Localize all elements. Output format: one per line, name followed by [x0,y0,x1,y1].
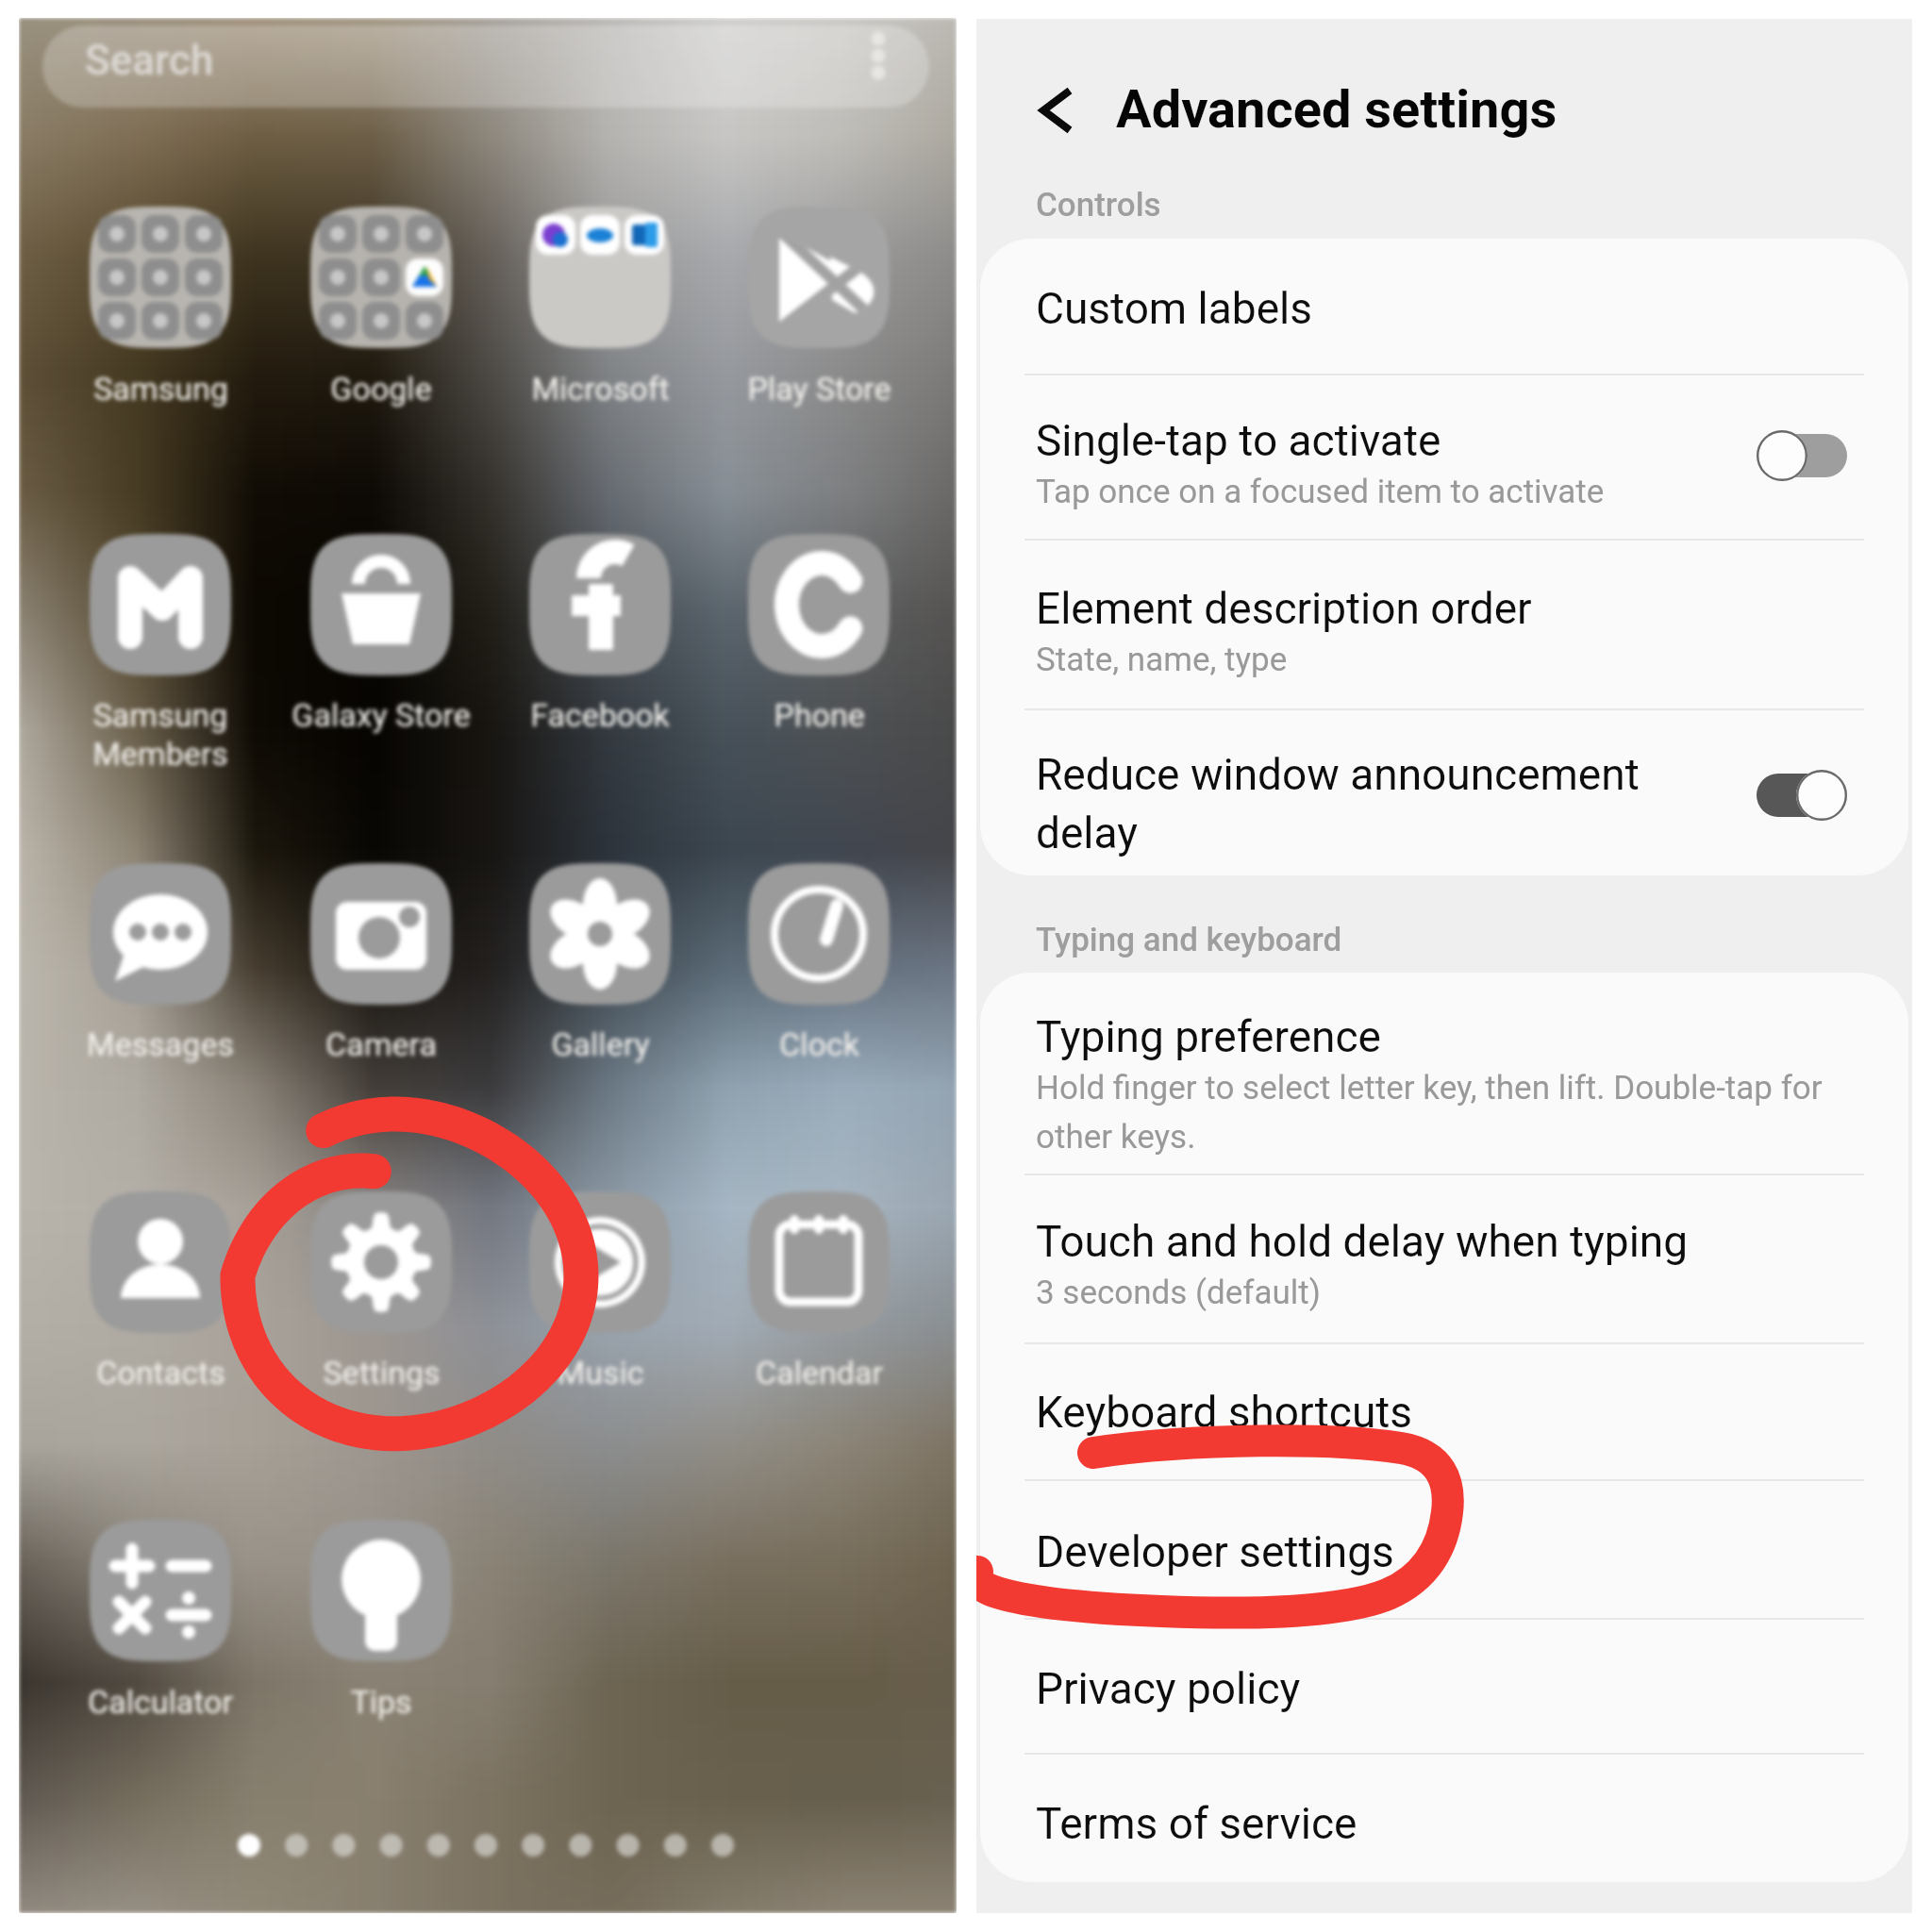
button[interactable]: Single-tap to activate [980,374,1908,539]
staticText: Samsung [93,370,228,408]
staticText: Element description order [1036,583,1532,634]
button[interactable]: Phone [708,601,929,808]
staticText: 3 seconds (default) [1036,1274,1321,1312]
button[interactable]: Galaxy Store [271,601,491,808]
button[interactable]: Samsung Members [50,601,271,808]
button[interactable]: Typing preference [980,973,1908,1174]
staticText: Contacts [96,1354,225,1391]
staticText: Calendar [756,1354,883,1391]
button[interactable]: Samsung [50,275,271,482]
staticText: Settings [323,1354,441,1391]
button[interactable]: Gallery [490,930,710,1138]
button[interactable]: Facebook [490,601,710,808]
staticText: Play Store [747,370,891,408]
staticText: Developer settings [1036,1526,1394,1577]
staticText: Tap once on a focused item to activate [1036,473,1605,511]
staticText: Camera [325,1025,437,1063]
button[interactable]: Messages [50,930,271,1138]
staticText: Search [85,36,214,85]
button[interactable]: Microsoft [490,275,710,482]
button[interactable]: Element description order [980,539,1908,708]
staticText: Custom labels [1036,283,1312,334]
staticText: Phone [774,696,865,734]
staticText: Music [557,1354,644,1391]
button[interactable]: Terms of service [980,1753,1908,1882]
button[interactable]: Music [490,1258,710,1466]
staticText: Microsoft [531,370,670,408]
button[interactable]: Switch off [1757,429,1847,482]
button[interactable]: Calendar [708,1258,929,1466]
button[interactable]: Switch on [1757,769,1847,822]
staticText: State, name, type [1036,641,1288,679]
button[interactable]: Back [1016,70,1097,151]
button[interactable]: Reduce window announcement delay [980,708,1908,875]
staticText: Samsung Members [92,696,228,774]
button[interactable]: Privacy policy [980,1618,1908,1753]
staticText: Clock [779,1025,859,1063]
button[interactable]: Calculator [50,1588,271,1795]
button[interactable]: Touch and hold delay when typing [980,1174,1908,1342]
button[interactable]: Settings [271,1258,491,1466]
staticText: Single-tap to activate [1036,415,1441,466]
staticText: Facebook [530,696,670,734]
staticText: Calculator [88,1683,233,1721]
staticText: Messages [87,1025,234,1063]
staticText: Typing preference [1036,1011,1381,1062]
button[interactable]: Developer settings [980,1479,1908,1618]
staticText: Galaxy Store [291,696,471,734]
button[interactable]: Tips [271,1588,491,1795]
staticText: Google [330,370,432,408]
staticText: Touch and hold delay when typing [1036,1216,1689,1267]
staticText: Keyboard shortcuts [1036,1387,1413,1438]
staticText: Advanced settings [1116,78,1557,141]
staticText: Reduce window announcement delay [1036,749,1734,858]
button[interactable]: Contacts [50,1258,271,1466]
staticText: Typing and keyboard [1036,921,1342,959]
button[interactable]: Keyboard shortcuts [980,1342,1908,1479]
staticText: Terms of service [1036,1798,1357,1849]
button[interactable]: Custom labels [980,239,1908,374]
staticText: Tips [350,1683,412,1721]
button[interactable]: Clock [708,930,929,1138]
button[interactable]: Camera [271,930,491,1138]
staticText: Controls [1036,186,1161,225]
staticText: Gallery [551,1025,650,1063]
staticText: Privacy policy [1036,1663,1301,1714]
button[interactable]: Google [271,275,491,482]
button[interactable]: Play Store [708,275,929,482]
staticText: Hold finger to select letter key, then l… [1036,1069,1866,1157]
